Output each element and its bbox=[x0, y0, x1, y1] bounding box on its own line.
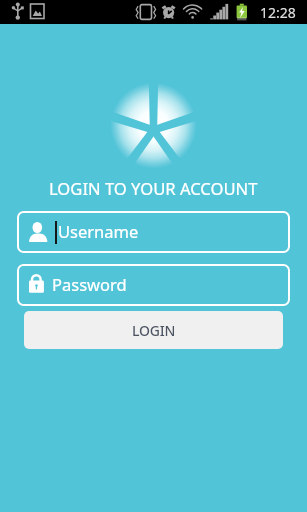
staticText: LOGIN bbox=[132, 321, 176, 340]
staticText: 12:28 bbox=[260, 3, 296, 22]
staticText: Password bbox=[52, 273, 127, 295]
button[interactable]: Password bbox=[17, 264, 290, 306]
staticText: LOGIN TO YOUR ACCOUNT bbox=[49, 177, 258, 200]
button[interactable]: LOGIN bbox=[24, 311, 283, 349]
staticText: Username bbox=[58, 220, 139, 242]
button[interactable]: Username bbox=[17, 211, 290, 253]
